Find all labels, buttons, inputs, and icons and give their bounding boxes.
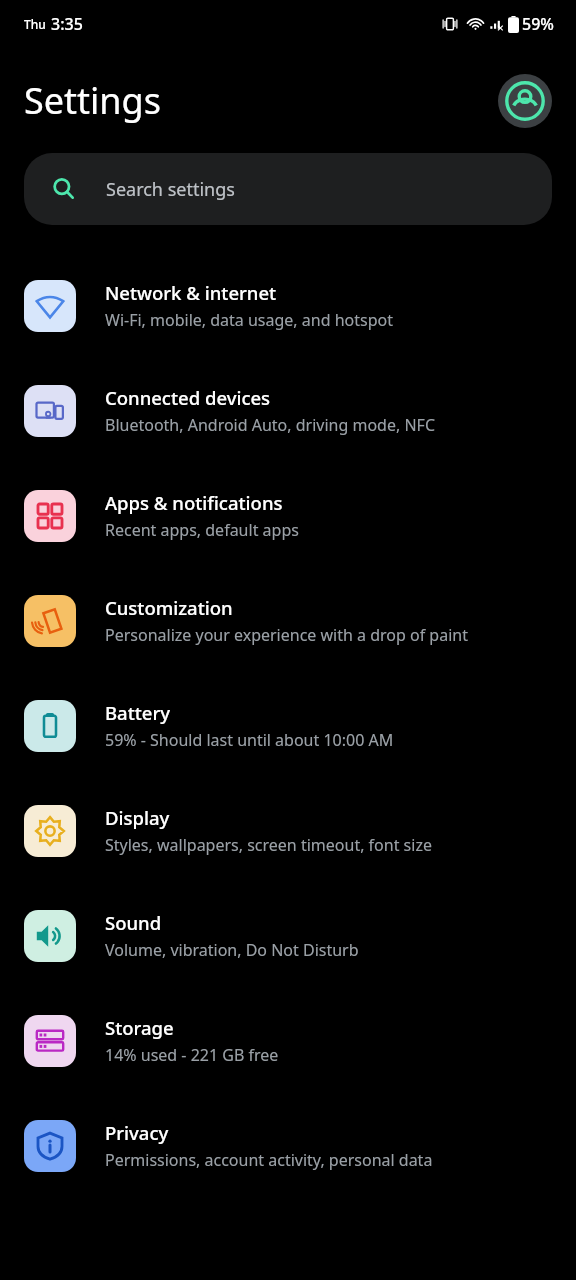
staticText: 3:35 (51, 13, 83, 35)
staticText: 59% - Should last until about 10:00 AM (105, 729, 394, 751)
staticText: Recent apps, default apps (105, 519, 299, 541)
button[interactable]: Storage (0, 988, 576, 1093)
button[interactable]: Customization (0, 568, 576, 673)
staticText: Wi-Fi, mobile, data usage, and hotspot (105, 309, 393, 331)
button[interactable]: Connected devices (0, 358, 576, 463)
staticText: Battery (105, 700, 171, 725)
button[interactable]: Search settings (24, 153, 552, 225)
button[interactable]: Battery (0, 673, 576, 778)
button[interactable]: Sound (0, 883, 576, 988)
button[interactable]: Apps & notifications (0, 463, 576, 568)
staticText: Connected devices (105, 385, 271, 410)
staticText: Apps & notifications (105, 490, 283, 515)
staticText: Personalize your experience with a drop … (105, 624, 468, 646)
button[interactable]: Display (0, 778, 576, 883)
staticText: Thu (24, 16, 46, 32)
button[interactable]: Account (498, 74, 552, 128)
staticText: Network & internet (105, 280, 277, 305)
staticText: Permissions, account activity, personal … (105, 1149, 433, 1171)
staticText: Display (105, 805, 170, 830)
staticText: Bluetooth, Android Auto, driving mode, N… (105, 414, 436, 436)
staticText: Sound (105, 910, 162, 935)
button[interactable]: Privacy (0, 1093, 576, 1198)
button[interactable]: Network & internet (0, 253, 576, 358)
staticText: 14% used - 221 GB free (105, 1044, 279, 1066)
staticText: Privacy (105, 1120, 169, 1145)
staticText: 59% (522, 13, 554, 35)
staticText: Volume, vibration, Do Not Disturb (105, 939, 359, 961)
staticText: Search settings (106, 177, 235, 202)
staticText: Customization (105, 595, 233, 620)
staticText: Storage (105, 1015, 174, 1040)
staticText: Styles, wallpapers, screen timeout, font… (105, 834, 432, 856)
staticText: Settings (24, 76, 161, 125)
